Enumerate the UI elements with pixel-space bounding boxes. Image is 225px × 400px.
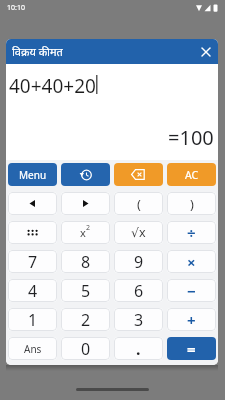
staticText: Ans — [24, 342, 42, 356]
staticText: = — [187, 339, 196, 359]
staticText: × — [187, 252, 196, 272]
button[interactable]: 2 — [61, 308, 110, 331]
staticText: ÷ — [187, 223, 196, 243]
staticText: . — [136, 338, 141, 360]
button[interactable]: 3 — [114, 308, 163, 331]
button[interactable]: Menu — [8, 163, 57, 186]
button[interactable]: 5 — [61, 279, 110, 302]
staticText: + — [187, 310, 196, 330]
button[interactable] — [193, 39, 218, 64]
staticText: 5 — [81, 280, 91, 302]
button[interactable]: 8 — [61, 250, 110, 273]
button[interactable]: 9 — [114, 250, 163, 273]
staticText: AC — [185, 168, 199, 182]
staticText: x — [80, 225, 86, 240]
staticText: 7 — [28, 251, 38, 273]
staticText: 2 — [81, 309, 91, 331]
staticText: 10:10 — [7, 3, 25, 13]
button[interactable]: ) — [167, 192, 216, 215]
button[interactable]: − — [167, 279, 216, 302]
button[interactable] — [8, 221, 57, 244]
staticText: 8 — [81, 251, 91, 273]
staticText: − — [187, 281, 196, 301]
button[interactable] — [114, 163, 163, 186]
staticText: =100 — [168, 124, 214, 151]
staticText: Menu — [19, 168, 47, 182]
staticText: विक्रय कीमत — [12, 44, 63, 59]
staticText: 4 — [28, 280, 38, 302]
button[interactable]: ( — [114, 192, 163, 215]
staticText: 6 — [134, 280, 144, 302]
button[interactable]: × — [167, 250, 216, 273]
button[interactable]: = — [167, 337, 216, 360]
staticText: 0 — [81, 338, 91, 360]
button[interactable] — [8, 192, 57, 215]
button[interactable]: 4 — [8, 279, 57, 302]
staticText: 1 — [28, 309, 38, 331]
button[interactable]: x — [61, 221, 110, 244]
button[interactable]: 7 — [8, 250, 57, 273]
button[interactable]: Ans — [8, 337, 57, 360]
button[interactable]: + — [167, 308, 216, 331]
staticText: 9 — [134, 251, 144, 273]
button[interactable] — [61, 163, 110, 186]
staticText: 3 — [134, 309, 144, 331]
staticText: 2 — [86, 223, 91, 233]
button[interactable]: . — [114, 337, 163, 360]
button[interactable]: 6 — [114, 279, 163, 302]
staticText: √x — [131, 224, 146, 241]
staticText: ) — [190, 195, 194, 213]
button[interactable]: 0 — [61, 337, 110, 360]
button[interactable]: 1 — [8, 308, 57, 331]
staticText: ( — [137, 195, 141, 213]
button[interactable]: AC — [167, 163, 216, 186]
staticText: 40+40+20 — [9, 73, 96, 99]
button[interactable]: ÷ — [167, 221, 216, 244]
button[interactable]: √x — [114, 221, 163, 244]
button[interactable] — [61, 192, 110, 215]
